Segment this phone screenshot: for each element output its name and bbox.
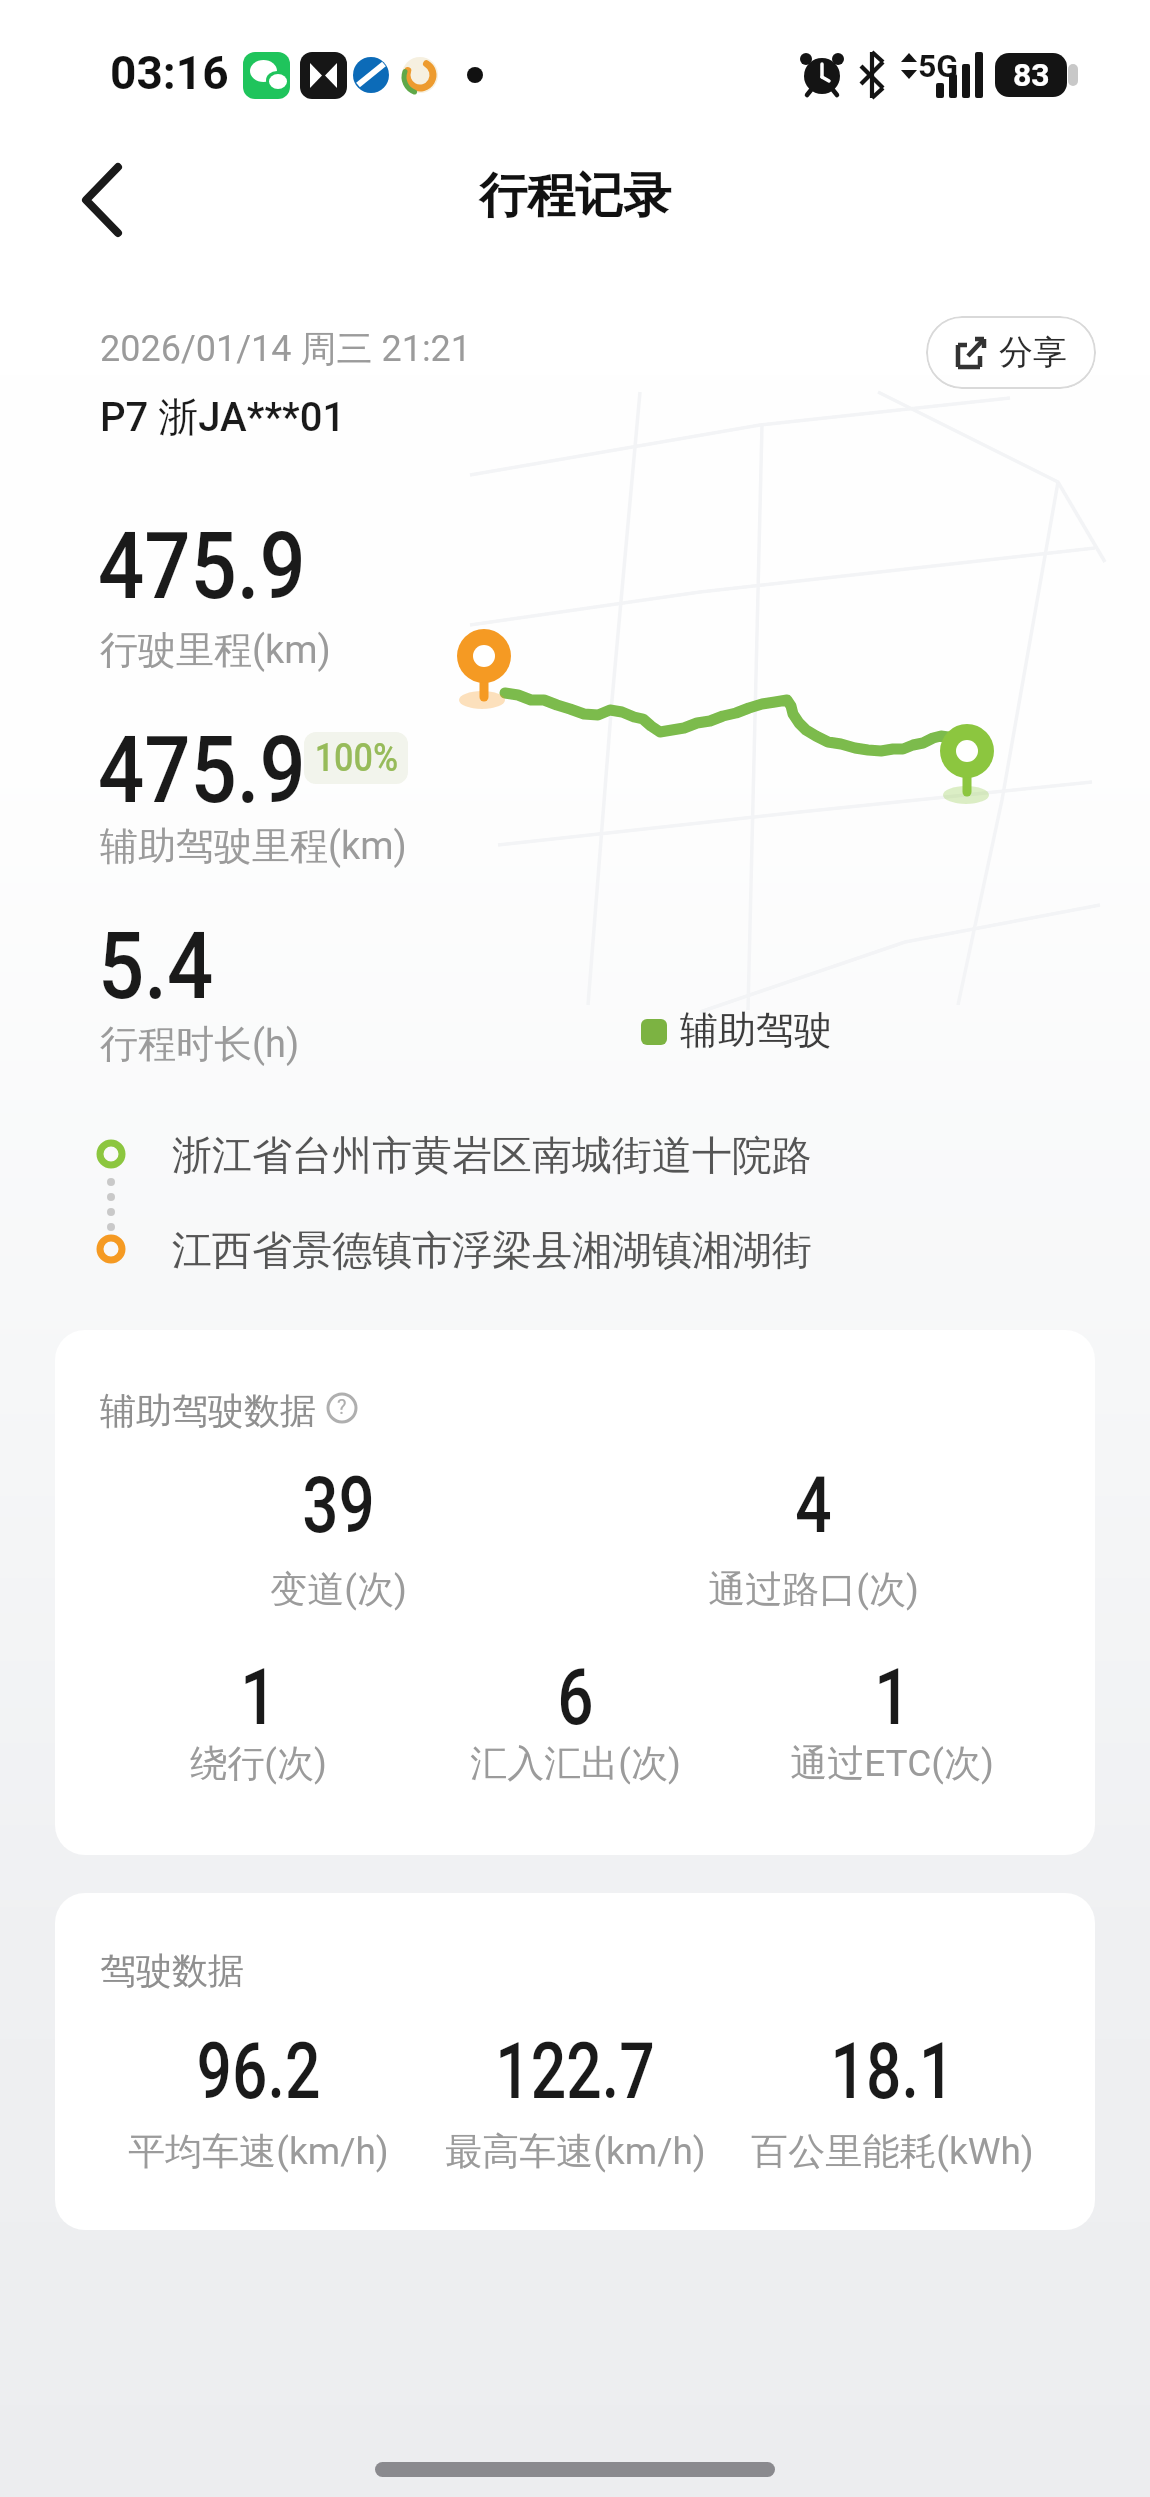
staticText: 100%	[315, 736, 398, 781]
staticText: 96.2	[196, 2026, 320, 2117]
staticText: 平均车速(km/h)	[128, 2128, 389, 2175]
staticText: 辅助驾驶	[680, 1006, 832, 1054]
staticText: 475.9	[98, 513, 306, 621]
staticText: 行程记录	[479, 166, 671, 226]
staticText: 通过路口(次)	[708, 1566, 919, 1613]
staticText: 5G	[918, 47, 959, 85]
staticText: 1	[874, 1652, 911, 1743]
staticText: 变道(次)	[270, 1566, 407, 1613]
staticText: 475.9	[98, 717, 306, 825]
staticText: 江西省景德镇市浮梁县湘湖镇湘湖街	[172, 1225, 812, 1275]
staticText: 行程时长(h)	[100, 1020, 300, 1068]
staticText: 83	[1013, 56, 1050, 94]
staticText: 百公里能耗(kWh)	[751, 2128, 1034, 2175]
staticText: 行驶里程(km)	[100, 626, 331, 674]
staticText: ?	[337, 1395, 347, 1418]
staticText: 03:16	[110, 46, 229, 100]
staticText: 通过ETC(次)	[790, 1740, 994, 1787]
staticText: 122.7	[495, 2026, 655, 2117]
staticText: 2026/01/14 周三 21:21	[100, 326, 472, 371]
staticText: 4	[795, 1460, 832, 1551]
staticText: 6	[557, 1652, 594, 1743]
staticText: P7 浙JA***01	[100, 392, 346, 442]
staticText: 最高车速(km/h)	[445, 2128, 706, 2175]
staticText: 辅助驾驶数据	[100, 1388, 316, 1433]
staticText: 汇入汇出(次)	[470, 1740, 681, 1787]
staticText: 分享	[999, 331, 1067, 374]
staticText: 辅助驾驶里程(km)	[100, 822, 407, 870]
button[interactable]: 分享	[926, 316, 1096, 389]
staticText: 1	[240, 1652, 277, 1743]
staticText: 绕行(次)	[190, 1740, 327, 1787]
staticText: 5.4	[98, 913, 214, 1021]
staticText: 39	[302, 1460, 375, 1551]
button[interactable]	[60, 155, 150, 245]
staticText: 浙江省台州市黄岩区南城街道十院路	[172, 1130, 812, 1180]
staticText: 18.1	[830, 2026, 954, 2117]
staticText: 驾驶数据	[100, 1948, 244, 1993]
